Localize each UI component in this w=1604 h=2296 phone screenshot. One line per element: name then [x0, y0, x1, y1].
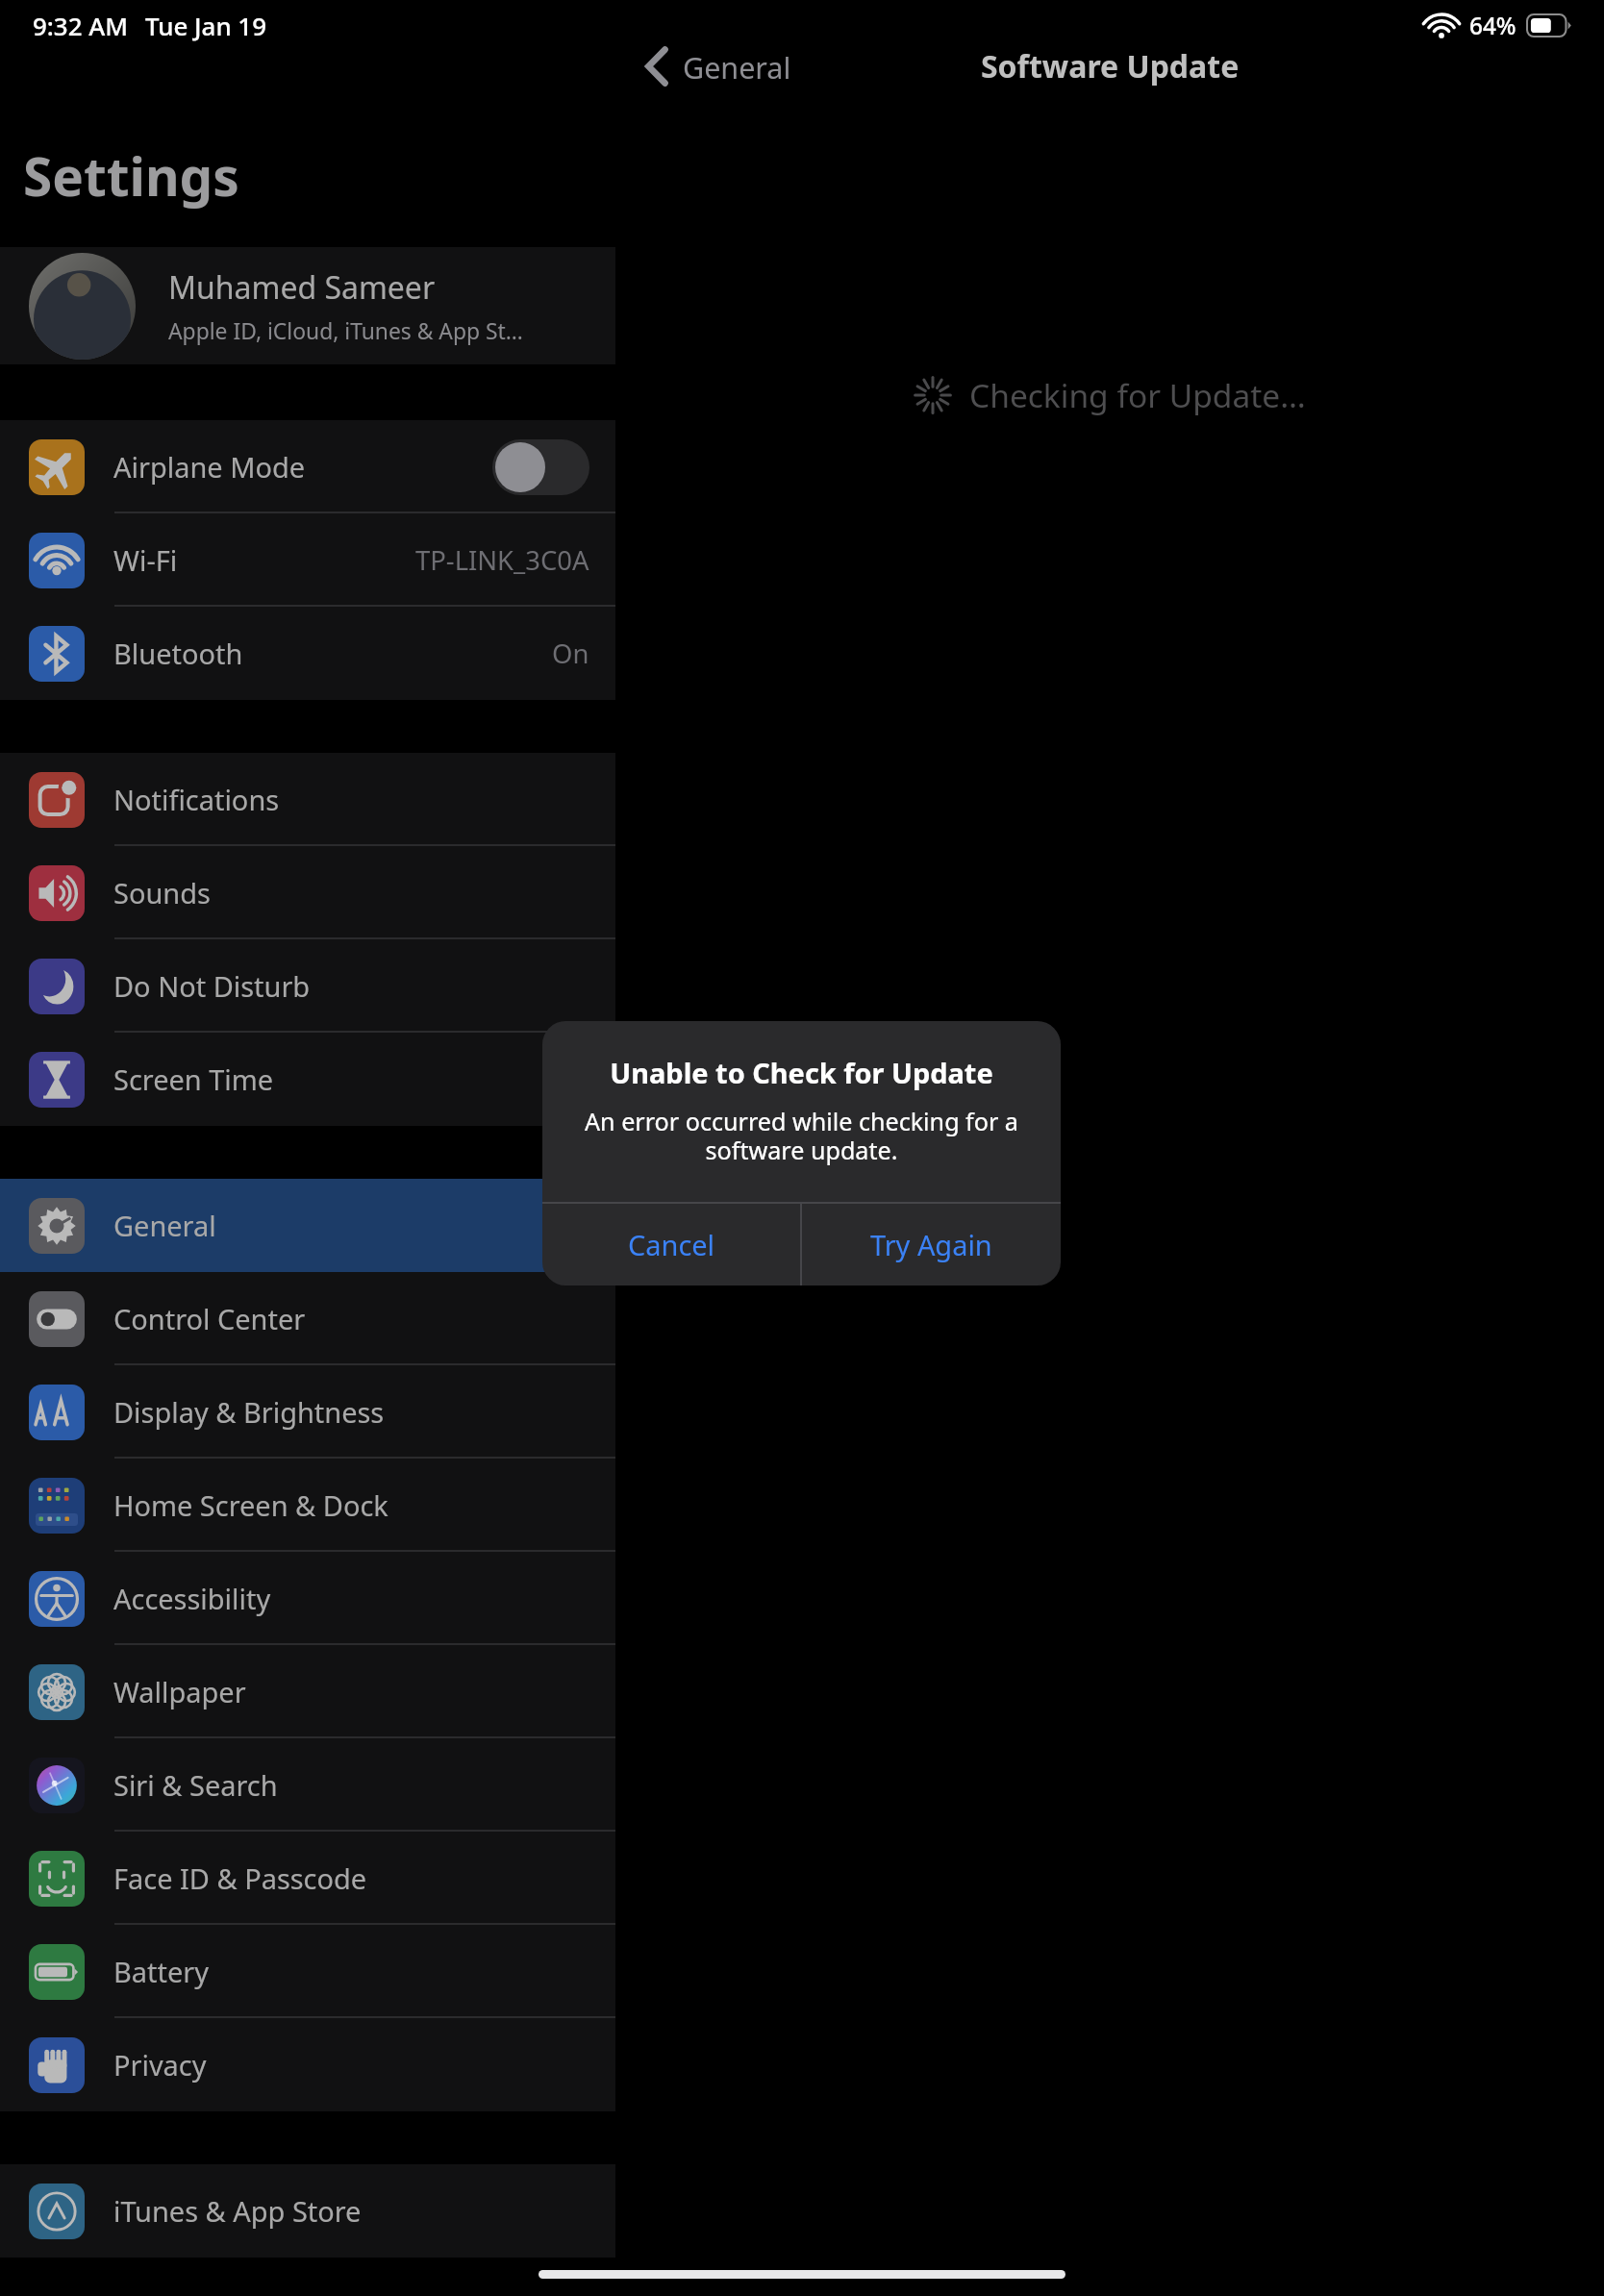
button[interactable]: Control Center — [0, 1272, 615, 1365]
button[interactable]: Wallpaper — [0, 1645, 615, 1738]
staticText: Screen Time — [113, 1061, 589, 1098]
button[interactable]: Privacy — [0, 2018, 615, 2111]
staticText: Control Center — [113, 1300, 589, 1337]
staticText: Privacy — [113, 2046, 589, 2084]
staticText: Software Update — [981, 45, 1240, 87]
staticText: Unable to Check for Update — [610, 1054, 993, 1091]
button[interactable]: Bluetooth — [0, 607, 615, 700]
button[interactable]: Muhamed Sameer — [0, 247, 615, 364]
staticText: On — [552, 636, 589, 671]
staticText: General — [683, 47, 791, 87]
staticText: Do Not Disturb — [113, 967, 589, 1005]
staticText: 64% — [1469, 10, 1516, 41]
button[interactable]: Battery — [0, 1925, 615, 2018]
button[interactable]: General — [641, 44, 791, 88]
staticText: Sounds — [113, 874, 589, 911]
staticText: Accessibility — [113, 1580, 589, 1617]
staticText: Bluetooth — [113, 635, 552, 672]
staticText: Display & Brightness — [113, 1393, 589, 1431]
button[interactable]: General — [0, 1179, 615, 1272]
staticText: Notifications — [113, 781, 589, 818]
button[interactable]: Screen Time — [0, 1033, 615, 1126]
staticText: General — [113, 1207, 589, 1244]
staticText: Cancel — [628, 1226, 715, 1263]
staticText: Apple ID, iCloud, iTunes & App St… — [168, 316, 523, 346]
staticText: Battery — [113, 1953, 589, 1990]
staticText: Face ID & Passcode — [113, 1859, 589, 1897]
button[interactable]: Airplane Mode — [0, 420, 615, 513]
button[interactable]: iTunes & App Store — [0, 2164, 615, 2258]
staticText: TP-LINK_3C0A — [415, 542, 589, 578]
button[interactable]: Accessibility — [0, 1552, 615, 1645]
button[interactable]: Notifications — [0, 753, 615, 846]
button[interactable]: Do Not Disturb — [0, 939, 615, 1033]
button[interactable]: Cancel — [542, 1204, 800, 1285]
button[interactable]: Home Screen & Dock — [0, 1459, 615, 1552]
staticText: Wi-Fi — [113, 541, 415, 579]
staticText: Muhamed Sameer — [168, 266, 436, 309]
staticText: Home Screen & Dock — [113, 1486, 589, 1524]
button[interactable]: Airplane Mode toggle — [492, 439, 589, 495]
staticText: Checking for Update… — [969, 373, 1306, 417]
button[interactable]: Display & Brightness — [0, 1365, 615, 1459]
button[interactable]: Wi-Fi — [0, 513, 615, 607]
staticText: Try Again — [870, 1226, 992, 1263]
staticText: Airplane Mode — [113, 448, 492, 486]
staticText: Wallpaper — [113, 1673, 589, 1710]
staticText: Siri & Search — [113, 1766, 589, 1804]
staticText: Settings — [23, 139, 239, 212]
staticText: iTunes & App Store — [113, 2192, 589, 2230]
button[interactable]: Face ID & Passcode — [0, 1832, 615, 1925]
button[interactable]: Siri & Search — [0, 1738, 615, 1832]
button[interactable]: Try Again — [802, 1204, 1061, 1285]
button[interactable]: Sounds — [0, 846, 615, 939]
staticText: Tue Jan 19 — [145, 9, 266, 42]
staticText: 9:32 AM — [33, 9, 128, 42]
staticText: An error occurred while checking for a s… — [575, 1105, 1028, 1166]
